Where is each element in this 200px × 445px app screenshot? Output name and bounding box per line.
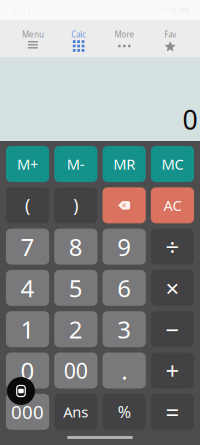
staticText: − [165,313,179,345]
button[interactable]: 1 [6,311,49,347]
button[interactable]: 9 [102,229,146,265]
button[interactable]: 5 [54,270,97,306]
staticText: × [122,200,127,211]
button[interactable]: − [151,311,194,347]
staticText: 1 [20,313,34,345]
staticText: AC [163,196,181,215]
staticText: Calc [71,29,86,40]
staticText: 9 [117,231,131,263]
button[interactable]: 0 [6,352,49,388]
button[interactable]: More [101,20,147,57]
staticText: MC [161,154,183,174]
button[interactable]: ( [6,187,49,223]
staticText: MR [113,154,135,174]
staticText: × [165,272,179,304]
staticText: Fav [164,29,176,40]
staticText: 00 [64,356,88,385]
staticText: % [118,401,131,422]
staticText: . [121,355,127,386]
staticText: More [114,29,134,40]
staticText: 0 [20,355,34,386]
staticText: 7 [20,231,34,263]
staticText: 000 [11,399,44,424]
button[interactable]: = [151,394,194,430]
staticText: + [165,355,179,386]
staticText: = [165,396,179,428]
button[interactable]: ) [54,187,97,223]
staticText: 0 [182,102,197,137]
staticText: Ans [63,402,88,422]
staticText: M+ [17,154,38,174]
button[interactable]: 4 [6,270,49,306]
button[interactable]: 000 [6,394,49,430]
staticText: ( [25,194,30,217]
button[interactable]: ÷ [151,229,194,265]
button[interactable]: + [151,352,194,388]
button[interactable]: MC [151,146,194,182]
staticText: ) [73,194,78,217]
staticText: Menu [22,29,44,40]
button[interactable]: Menu [10,20,56,57]
button[interactable]: AC [151,187,194,223]
button[interactable]: Fav [147,20,193,57]
button[interactable]: % [102,394,146,430]
button[interactable]: × [151,270,194,306]
button[interactable]: Rotate screen [7,377,35,405]
button[interactable]: 6 [102,270,146,306]
button[interactable]: 3 [102,311,146,347]
staticText: 4 [20,272,34,304]
staticText: 2 [69,313,83,345]
button[interactable]: 2 [54,311,97,347]
button[interactable]: . [102,352,146,388]
staticText: M- [67,154,85,174]
button[interactable]: Ans [54,394,97,430]
button[interactable]: 00 [54,352,97,388]
button[interactable]: Calc [56,20,102,57]
staticText: 5 [69,272,83,304]
button[interactable]: M- [54,146,97,182]
staticText: 8 [69,231,83,263]
staticText: 3 [117,313,131,345]
button[interactable]: 7 [6,229,49,265]
staticText: 6 [117,272,131,304]
button[interactable]: MR [102,146,146,182]
button[interactable]: 8 [54,229,97,265]
button[interactable]: M+ [6,146,49,182]
staticText: ÷ [165,231,179,263]
button[interactable]: Delete [102,187,146,223]
